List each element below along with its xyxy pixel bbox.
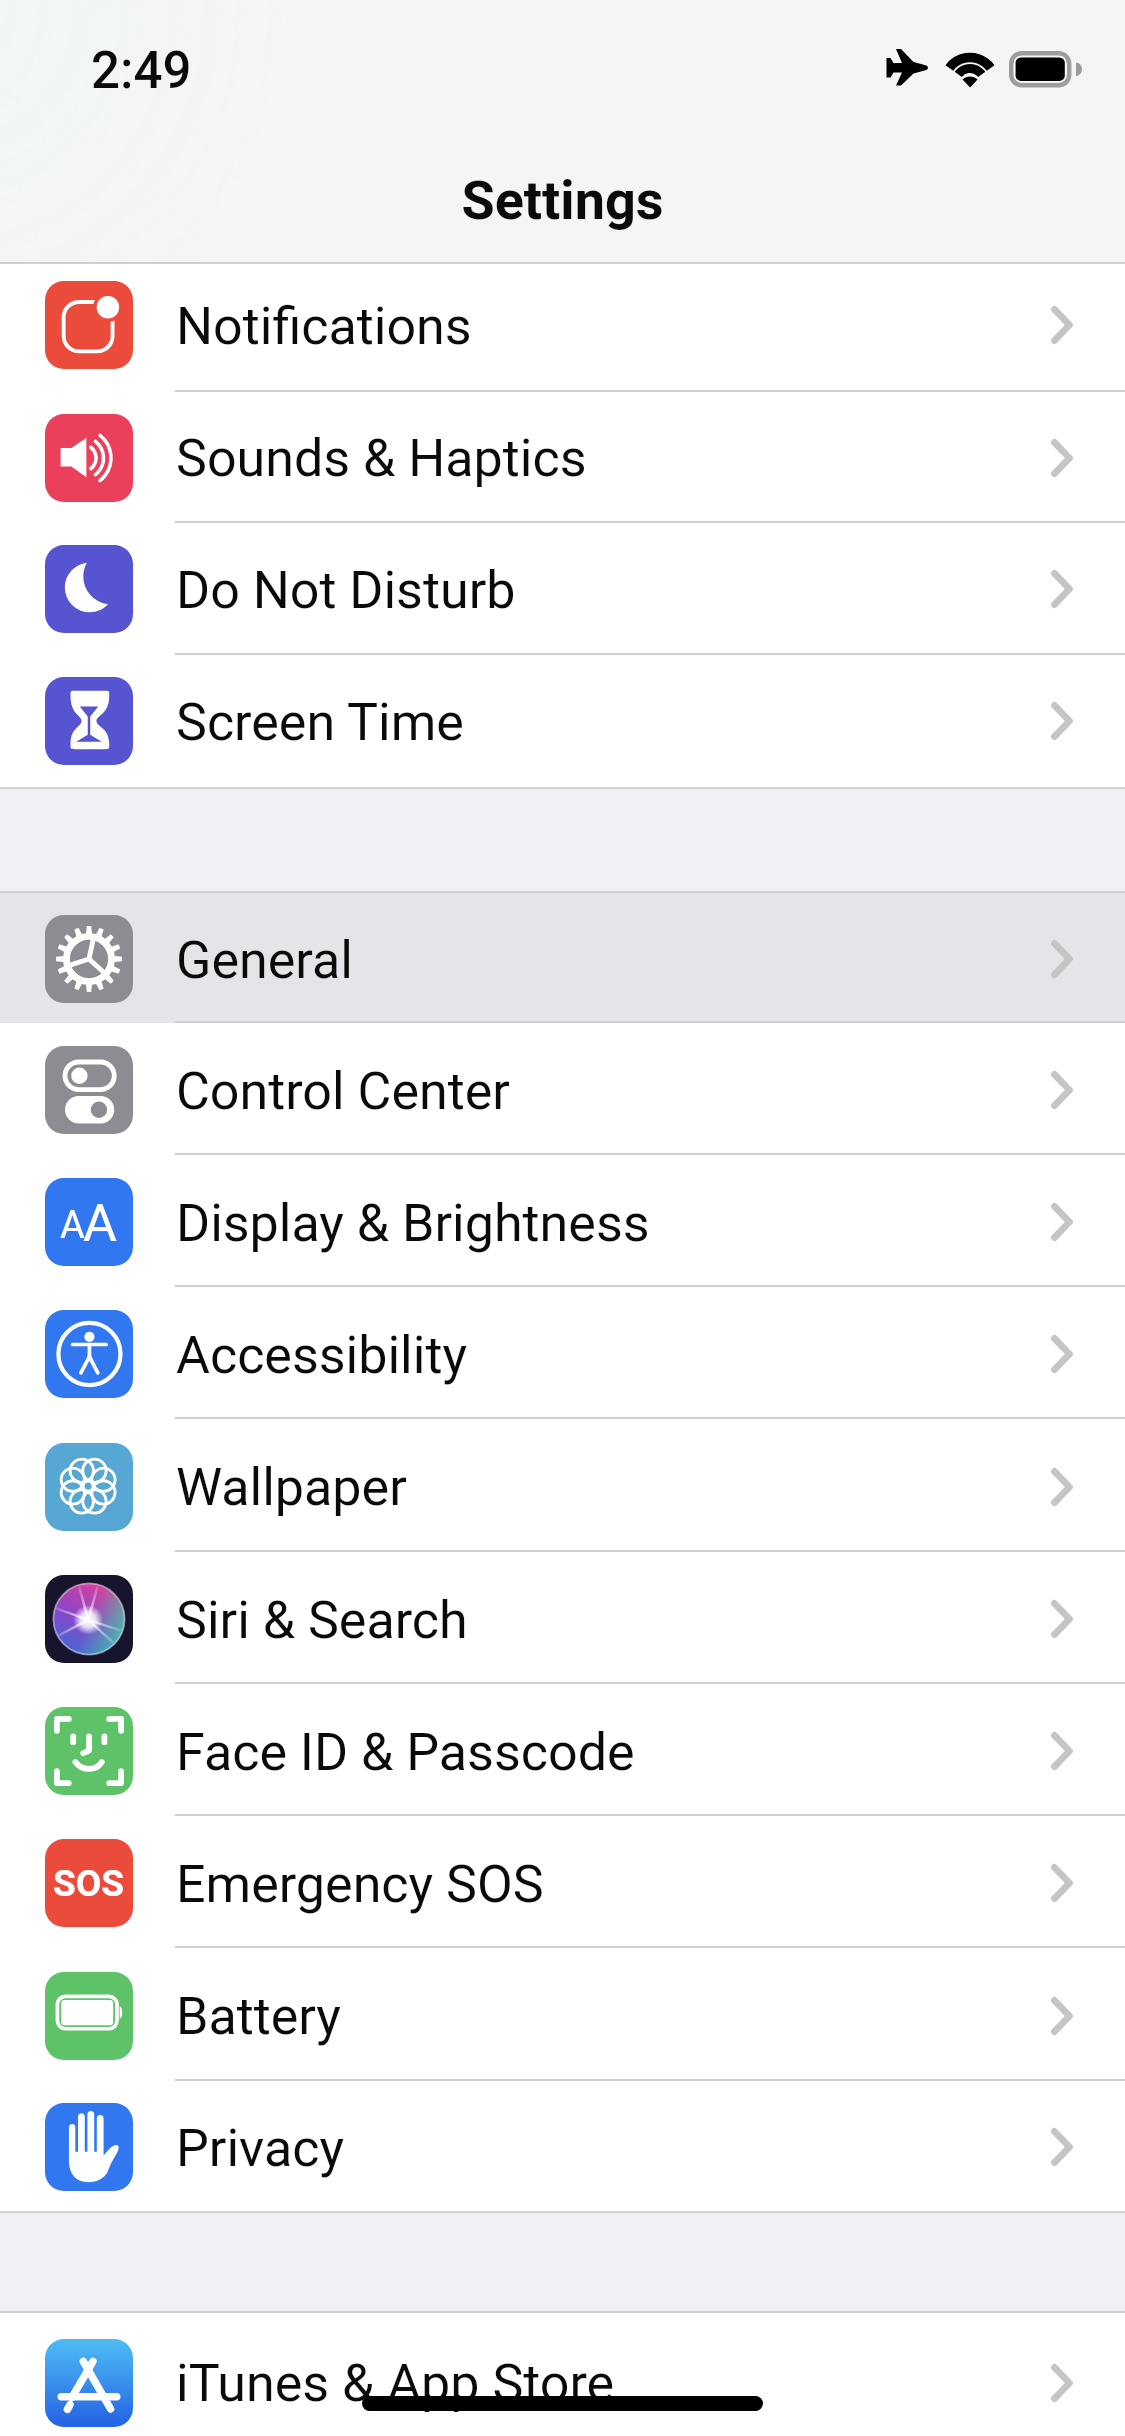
staticText: A [83,1193,117,1254]
button[interactable]: General [0,893,1125,1023]
button[interactable]: Notifications [0,264,1125,392]
staticText: Notifications [176,296,472,357]
button[interactable]: Control Center [0,1023,1125,1155]
other: Status icons [885,46,1085,92]
button[interactable]: Privacy [0,2081,1125,2211]
button[interactable]: Battery [0,1948,1125,2081]
staticText: Settings [461,169,664,232]
staticText: Battery [176,1986,341,2047]
button[interactable]: SOS [0,1816,1125,1948]
staticText: Emergency SOS [176,1854,544,1915]
staticText: Sounds & Haptics [176,428,587,489]
button[interactable]: A [0,1155,1125,1287]
staticText: Accessibility [176,1325,468,1386]
staticText: Control Center [176,1061,510,1122]
staticText: Wallpaper [176,1457,407,1518]
staticText: Do Not Disturb [176,560,516,621]
button[interactable]: Do Not Disturb [0,523,1125,655]
staticText: General [176,930,353,991]
button[interactable]: Sounds & Haptics [0,392,1125,523]
staticText: SOS [53,1862,125,1905]
staticText: Face ID & Passcode [176,1722,635,1783]
staticText: 2:49 [91,41,192,101]
button[interactable]: Siri & Search [0,1552,1125,1684]
button[interactable]: Accessibility [0,1287,1125,1419]
button[interactable]: Wallpaper [0,1419,1125,1552]
staticText: iTunes & App Store [176,2353,615,2414]
button[interactable]: Face ID & Passcode [0,1684,1125,1816]
staticText: Screen Time [176,692,464,753]
button[interactable]: iTunes & App Store [0,2313,1125,2436]
staticText: A [60,1203,85,1248]
staticText: Siri & Search [176,1590,468,1651]
staticText: Display & Brightness [176,1193,650,1254]
staticText: Privacy [176,2118,344,2179]
button[interactable]: Screen Time [0,655,1125,787]
